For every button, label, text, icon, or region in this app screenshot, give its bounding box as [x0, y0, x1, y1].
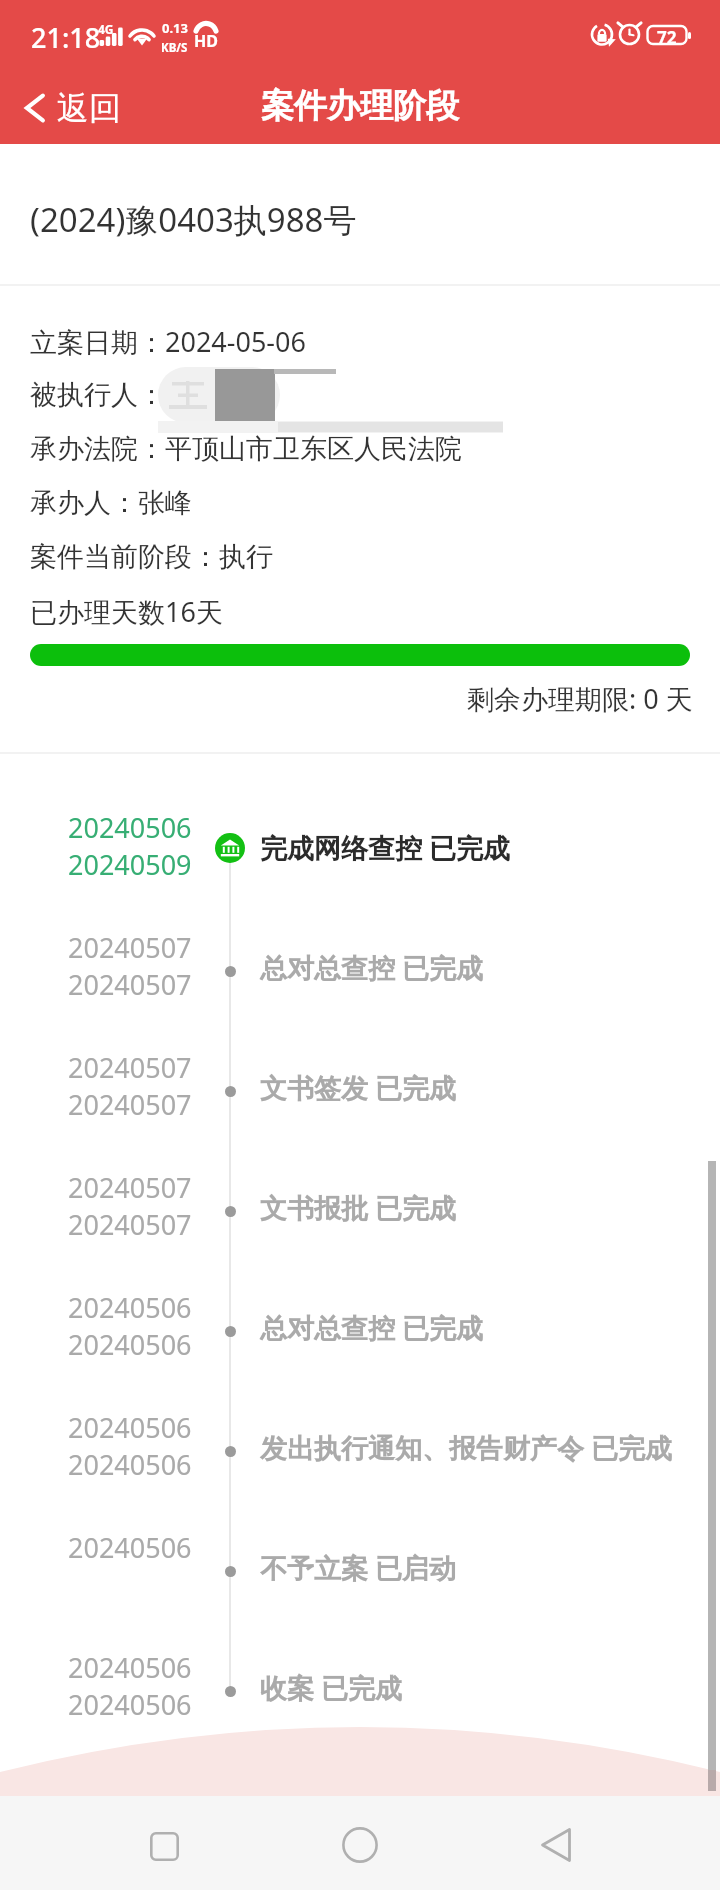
button[interactable]: 20240506 [0, 793, 720, 913]
staticText: HD [194, 30, 218, 52]
button[interactable]: 20240506 [0, 1273, 720, 1393]
button[interactable]: 20240506 [0, 1393, 720, 1513]
staticText: 案件办理阶段 [261, 85, 459, 127]
staticText: 20240509 [68, 846, 192, 883]
staticText: 总对总查控 已完成 [260, 1309, 484, 1346]
staticText: 不予立案 已启动 [260, 1549, 457, 1586]
staticText: 21:18 [31, 19, 101, 56]
staticText: 0.13 [162, 19, 188, 37]
staticText: 已办理天数16天 [30, 593, 223, 630]
staticText: KB/S [161, 40, 188, 56]
staticText: 20240506 [68, 1446, 192, 1483]
staticText: (2024)豫0403执988号 [30, 197, 357, 242]
staticText: 20240507 [68, 1169, 192, 1206]
button[interactable]: 20240507 [0, 913, 720, 1033]
staticText: 案件当前阶段：执行 [30, 540, 273, 574]
staticText: 20240506 [68, 1529, 192, 1566]
staticText: 发出执行通知、报告财产令 已完成 [260, 1429, 673, 1466]
staticText: 20240506 [68, 1686, 192, 1723]
staticText: 20240506 [68, 1649, 192, 1686]
staticText: 立案日期：2024-05-06 [30, 323, 306, 360]
staticText: 文书签发 已完成 [260, 1069, 457, 1106]
button[interactable]: 20240507 [0, 1153, 720, 1273]
staticText: 4G [98, 21, 114, 37]
staticText: 20240506 [68, 1289, 192, 1326]
staticText: 承办人：张峰 [30, 486, 192, 520]
staticText: 20240506 [68, 1409, 192, 1446]
staticText: 被执行人： [30, 378, 165, 412]
staticText: 20240507 [68, 966, 192, 1003]
staticText: 文书报批 已完成 [260, 1189, 457, 1226]
button[interactable]: 20240506 [0, 1633, 720, 1753]
staticText: 完成网络查控 已完成 [260, 829, 511, 866]
staticText: 总对总查控 已完成 [260, 949, 484, 986]
staticText: 72 [657, 26, 677, 49]
button[interactable]: Home [320, 1805, 400, 1885]
staticText: 承办法院：平顶山市卫东区人民法院 [30, 432, 462, 466]
staticText: 返回 [57, 88, 121, 128]
staticText: 20240506 [68, 809, 192, 846]
staticText: 20240507 [68, 1049, 192, 1086]
button[interactable]: 20240507 [0, 1033, 720, 1153]
button[interactable]: Recent apps [124, 1806, 204, 1886]
staticText: 收案 已完成 [260, 1669, 403, 1706]
staticText: 剩余办理期限: 0 天 [467, 680, 693, 717]
button[interactable]: 20240506 [0, 1513, 720, 1633]
button[interactable]: Back [516, 1805, 596, 1885]
staticText: 20240507 [68, 929, 192, 966]
staticText: 20240507 [68, 1086, 192, 1123]
staticText: 20240507 [68, 1206, 192, 1243]
button[interactable]: 返回 [0, 78, 143, 138]
staticText: 20240506 [68, 1326, 192, 1363]
